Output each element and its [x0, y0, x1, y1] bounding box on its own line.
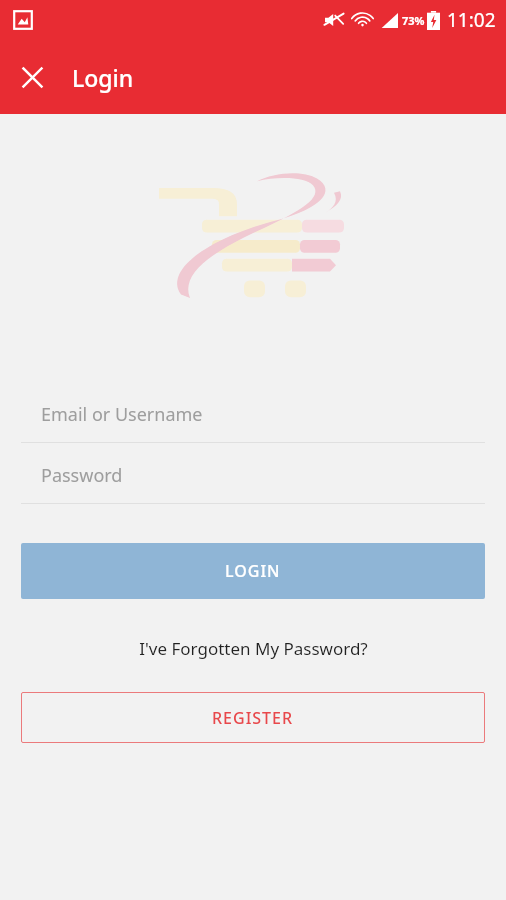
staticText: 73%	[402, 13, 425, 28]
button[interactable]: LOGIN	[21, 543, 485, 599]
button[interactable]: REGISTER	[21, 692, 485, 743]
button[interactable]: Email or Username	[21, 386, 485, 442]
button[interactable]: I've Forgotten My Password?	[21, 626, 485, 670]
staticText: Email or Username	[41, 402, 203, 427]
button[interactable]: Close	[8, 53, 56, 101]
staticText: REGISTER	[212, 707, 294, 729]
staticText: I've Forgotten My Password?	[139, 637, 368, 660]
staticText: Login	[72, 62, 134, 93]
button[interactable]: Password	[21, 447, 485, 503]
staticText: 11:02	[447, 7, 496, 33]
staticText: Password	[41, 463, 123, 488]
staticText: LOGIN	[225, 560, 281, 582]
